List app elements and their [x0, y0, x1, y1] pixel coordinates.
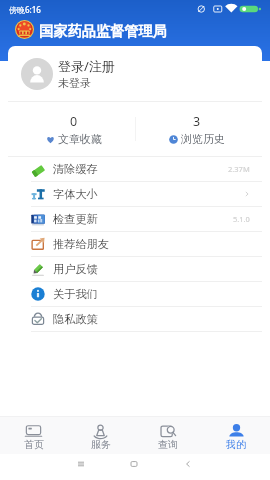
staticText: 傍晚6:16 [9, 4, 41, 15]
button[interactable]: 清除缓存 [8, 157, 262, 181]
button[interactable]: 首页 [0, 417, 67, 454]
staticText: 清除缓存 [53, 162, 98, 176]
staticText: 首页 [24, 438, 44, 451]
staticText: 服务 [91, 438, 111, 451]
staticText: 2.37M [228, 164, 250, 174]
staticText: 3 [193, 113, 201, 130]
button[interactable]: 关于我们 [8, 282, 262, 306]
button[interactable]: 隐私政策 [8, 307, 262, 331]
button[interactable]: 登录/注册 [8, 46, 262, 101]
staticText: 文章收藏 [58, 132, 102, 146]
staticText: 国家药品监督管理局 [39, 22, 167, 40]
button[interactable]: 检查更新 [8, 207, 262, 231]
button[interactable]: 查询 [134, 417, 202, 454]
staticText: 查询 [158, 438, 178, 451]
staticText: 推荐给朋友 [53, 237, 109, 251]
staticText: 用户反馈 [53, 262, 98, 276]
button[interactable]: 我的 [202, 417, 270, 454]
button[interactable]: 服务 [67, 417, 134, 454]
staticText: 隐私政策 [53, 312, 98, 326]
staticText: 5.1.0 [233, 214, 250, 224]
staticText: 浏览历史 [181, 132, 225, 146]
button[interactable]: 推荐给朋友 [8, 232, 262, 256]
staticText: 检查更新 [53, 212, 98, 226]
button[interactable]: 0 [12, 102, 135, 156]
staticText: 字体大小 [53, 187, 98, 201]
staticText: 我的 [226, 438, 246, 451]
button[interactable]: 用户反馈 [8, 257, 262, 281]
staticText: 0 [70, 113, 78, 130]
staticText: 登录/注册 [58, 57, 115, 75]
staticText: 未登录 [58, 76, 91, 90]
button[interactable]: 字体大小 [8, 182, 262, 206]
staticText: 关于我们 [53, 287, 98, 301]
button[interactable]: 3 [135, 102, 258, 156]
